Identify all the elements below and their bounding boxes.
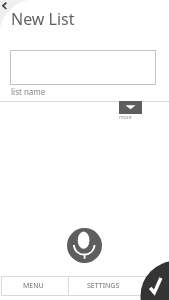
button[interactable]: [10, 50, 156, 85]
button[interactable]: SETTINGS: [69, 276, 137, 296]
button[interactable]: Back: [0, 0, 12, 12]
button[interactable]: Confirm: [140, 261, 169, 300]
button[interactable]: More: [119, 101, 142, 114]
staticText: New List: [11, 8, 75, 30]
staticText: SETTINGS: [87, 281, 120, 291]
staticText: list name: [11, 86, 46, 97]
staticText: more: [119, 114, 132, 121]
button[interactable]: MENU: [1, 276, 65, 296]
staticText: MENU: [23, 281, 44, 291]
button[interactable]: Voice input: [67, 228, 102, 263]
